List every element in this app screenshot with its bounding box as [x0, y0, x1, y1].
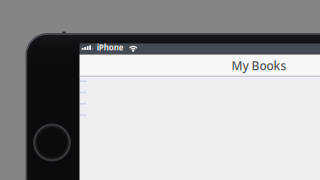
staticText: iPhone [97, 42, 124, 53]
staticText: My Books [231, 58, 286, 74]
button[interactable]: Home [33, 123, 71, 161]
